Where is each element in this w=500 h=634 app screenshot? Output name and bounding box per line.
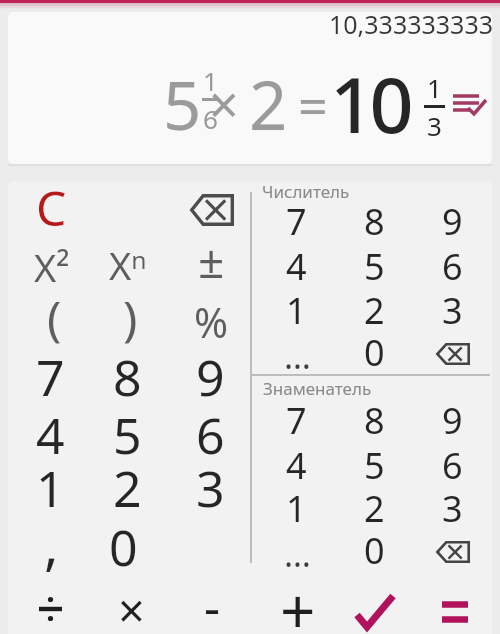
button[interactable]: - bbox=[176, 566, 248, 634]
staticText: 0 bbox=[364, 328, 385, 377]
staticText: 9 bbox=[442, 396, 463, 445]
staticText: 0 bbox=[109, 513, 138, 581]
button[interactable] bbox=[425, 592, 485, 632]
button[interactable]: 9 bbox=[172, 337, 248, 417]
button[interactable]: 2 bbox=[338, 282, 410, 339]
staticText: × bbox=[209, 68, 239, 139]
staticText: Xⁿ bbox=[109, 239, 147, 291]
staticText: 6 bbox=[203, 101, 218, 136]
button[interactable]: 4 bbox=[260, 437, 332, 494]
staticText: 9 bbox=[442, 197, 463, 246]
button[interactable]: 6 bbox=[172, 395, 248, 475]
button[interactable]: 0 bbox=[338, 324, 410, 381]
button[interactable]: 9 bbox=[416, 193, 488, 250]
button[interactable]: X² bbox=[14, 237, 90, 297]
button[interactable]: ( bbox=[16, 279, 92, 355]
staticText: = bbox=[298, 70, 328, 141]
staticText: 8 bbox=[364, 396, 385, 445]
button[interactable] bbox=[341, 588, 409, 634]
button[interactable]: 8 bbox=[338, 392, 410, 449]
staticText: 1 bbox=[36, 454, 65, 522]
staticText: 5 bbox=[364, 441, 385, 490]
button[interactable]: 4 bbox=[12, 395, 88, 475]
button[interactable]: 8 bbox=[338, 193, 410, 250]
button[interactable]: 5 bbox=[338, 238, 410, 295]
staticText: 4 bbox=[36, 401, 65, 469]
button[interactable]: … bbox=[261, 527, 333, 581]
staticText: 3 bbox=[427, 108, 442, 143]
button[interactable]: 3 bbox=[416, 480, 488, 537]
staticText: 1 bbox=[427, 70, 442, 105]
button[interactable]: 6 bbox=[416, 437, 488, 494]
button[interactable] bbox=[428, 335, 478, 373]
staticText: 5 bbox=[364, 242, 385, 291]
staticText: 10,333333333 bbox=[329, 12, 492, 41]
button[interactable]: ) bbox=[92, 279, 168, 355]
staticText: 6 bbox=[442, 242, 463, 291]
staticText: 2 bbox=[364, 484, 385, 533]
staticText: 3 bbox=[196, 454, 225, 522]
button[interactable] bbox=[182, 186, 242, 234]
staticText: ± bbox=[198, 229, 225, 292]
button[interactable]: 6 bbox=[416, 238, 488, 295]
button[interactable]: % bbox=[173, 289, 249, 354]
button[interactable]: 0 bbox=[85, 507, 161, 587]
staticText: X² bbox=[34, 241, 70, 293]
staticText: + bbox=[280, 568, 316, 634]
button[interactable]: 0 bbox=[338, 522, 410, 579]
button[interactable]: Знаменатель bbox=[263, 377, 372, 400]
staticText: ) bbox=[123, 285, 138, 350]
button[interactable]: 8 bbox=[89, 337, 165, 417]
button[interactable]: Числитель bbox=[262, 180, 350, 203]
button[interactable]: 4 bbox=[260, 238, 332, 295]
button[interactable]: , bbox=[13, 501, 89, 587]
button[interactable]: C bbox=[15, 169, 87, 245]
staticText: … bbox=[284, 531, 311, 577]
staticText: 1 bbox=[286, 484, 307, 533]
button[interactable]: 9 bbox=[416, 392, 488, 449]
staticText: ( bbox=[47, 285, 62, 350]
staticText: 1 bbox=[203, 63, 218, 98]
button[interactable]: 7 bbox=[12, 337, 88, 417]
button[interactable]: × bbox=[95, 572, 167, 634]
staticText: C bbox=[36, 175, 67, 240]
button[interactable]: 2 bbox=[89, 448, 165, 528]
staticText: 2 bbox=[113, 454, 142, 522]
button[interactable]: 2 bbox=[338, 480, 410, 537]
staticText: 2 bbox=[364, 286, 385, 335]
staticText: 7 bbox=[286, 396, 307, 445]
button[interactable]: 1 bbox=[260, 282, 332, 339]
staticText: 6 bbox=[442, 441, 463, 490]
staticText: , bbox=[44, 507, 59, 581]
button[interactable]: 1 bbox=[260, 480, 332, 537]
button[interactable]: Xⁿ bbox=[90, 235, 166, 295]
button[interactable]: 5 bbox=[338, 437, 410, 494]
button[interactable]: 10,333333333 bbox=[8, 12, 492, 164]
staticText: 2 bbox=[249, 58, 288, 149]
staticText: 4 bbox=[286, 242, 307, 291]
button[interactable]: 5 bbox=[89, 395, 165, 475]
staticText: 4 bbox=[286, 441, 307, 490]
button[interactable] bbox=[453, 92, 487, 118]
staticText: 5 bbox=[113, 401, 142, 469]
staticText: 8 bbox=[113, 343, 142, 411]
staticText: 6 bbox=[196, 401, 225, 469]
button[interactable]: … bbox=[261, 329, 333, 383]
staticText: 9 bbox=[196, 343, 225, 411]
button[interactable] bbox=[428, 533, 478, 571]
staticText: 8 bbox=[364, 197, 385, 246]
staticText: 5 bbox=[163, 58, 202, 149]
button[interactable]: 1 bbox=[12, 448, 88, 528]
button[interactable]: 3 bbox=[172, 448, 248, 528]
button[interactable]: 7 bbox=[260, 193, 332, 250]
staticText: … bbox=[284, 333, 311, 379]
staticText: 0 bbox=[364, 526, 385, 575]
button[interactable]: + bbox=[262, 560, 334, 634]
button[interactable] bbox=[15, 585, 87, 633]
staticText: - bbox=[204, 572, 221, 634]
button[interactable]: 7 bbox=[260, 392, 332, 449]
button[interactable]: ± bbox=[173, 224, 249, 297]
staticText: % bbox=[194, 294, 229, 350]
button[interactable]: 3 bbox=[416, 282, 488, 339]
staticText: 1 bbox=[286, 286, 307, 335]
